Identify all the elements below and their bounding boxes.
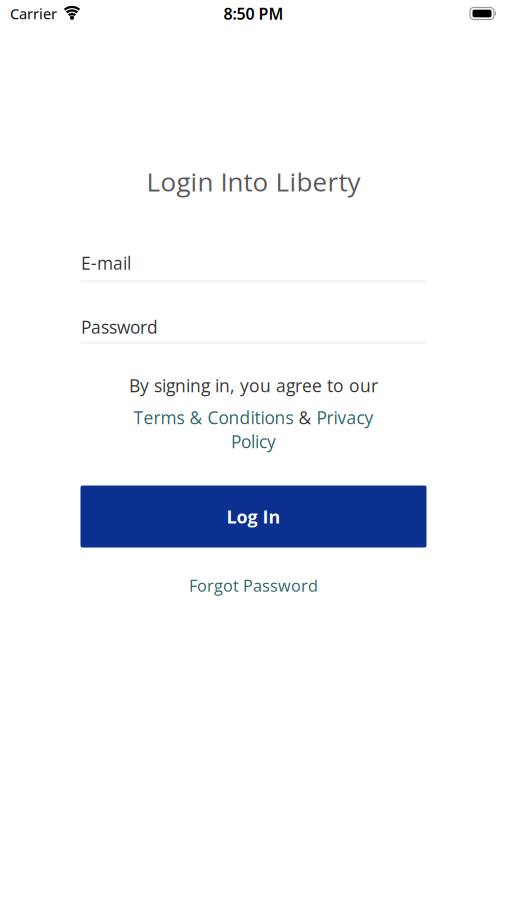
staticText: By signing in, you agree to our <box>129 374 378 397</box>
staticText: Log In <box>226 504 280 529</box>
staticText: Forgot Password <box>189 574 318 597</box>
button[interactable]: Terms & Conditions <box>133 406 293 429</box>
staticText: Password <box>81 315 158 339</box>
staticText: Carrier <box>10 4 57 23</box>
staticText: Privacy <box>316 406 373 429</box>
staticText: Policy <box>231 430 276 453</box>
button[interactable]: Log In <box>80 485 426 547</box>
staticText: 8:50 PM <box>223 3 283 24</box>
staticText: Login Into Liberty <box>146 164 360 199</box>
button[interactable]: Privacy Policy <box>231 429 276 453</box>
staticText: & <box>298 406 311 429</box>
staticText: Terms & Conditions <box>133 406 293 429</box>
button[interactable]: Forgot Password <box>189 573 318 597</box>
button[interactable]: E-mail text field <box>0 251 507 281</box>
staticText: E-mail <box>81 251 131 275</box>
button[interactable]: Password text field <box>0 315 507 343</box>
button[interactable]: Privacy Policy <box>316 406 373 429</box>
